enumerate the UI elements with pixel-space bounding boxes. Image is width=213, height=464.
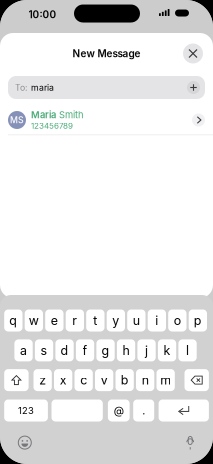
staticText: f <box>83 343 88 358</box>
staticText: w <box>29 313 39 328</box>
button[interactable]: h <box>117 339 135 361</box>
button[interactable]: MS <box>0 104 213 136</box>
button[interactable]: u <box>127 309 145 331</box>
staticText: k <box>164 343 171 358</box>
button[interactable]: b <box>115 369 134 391</box>
staticText: New Message <box>72 47 140 60</box>
button[interactable]: c <box>74 369 93 391</box>
button[interactable]: q <box>4 309 22 331</box>
button[interactable]: . <box>133 399 154 421</box>
staticText: h <box>123 343 130 358</box>
button[interactable]: i <box>148 309 166 331</box>
button[interactable]: Dictate <box>180 433 200 453</box>
staticText: z <box>39 373 46 388</box>
staticText: 10:00 <box>28 8 56 21</box>
button[interactable]: t <box>86 309 104 331</box>
button[interactable]: a <box>14 339 33 361</box>
staticText: p <box>194 313 202 328</box>
staticText: t <box>93 313 97 328</box>
staticText: Smith <box>56 109 84 121</box>
staticText: v <box>101 373 108 388</box>
button[interactable]: l <box>178 339 197 361</box>
staticText: j <box>145 343 148 358</box>
button[interactable]: p <box>189 309 207 331</box>
staticText: x <box>60 373 67 388</box>
staticText: b <box>121 373 129 388</box>
button[interactable]: e <box>45 309 63 331</box>
button[interactable]: g <box>96 339 115 361</box>
button[interactable]: z <box>33 369 52 391</box>
button[interactable]: n <box>136 369 154 391</box>
staticText: d <box>60 343 68 358</box>
staticText: MS <box>10 115 24 125</box>
staticText: m <box>160 373 171 388</box>
button[interactable]: w <box>25 309 43 331</box>
staticText: g <box>102 343 110 358</box>
button[interactable]: r <box>66 309 84 331</box>
staticText: o <box>174 313 181 328</box>
button[interactable]: Close <box>183 43 203 63</box>
staticText: c <box>80 373 87 388</box>
button[interactable]: f <box>76 339 94 361</box>
button[interactable]: Shift <box>4 369 29 391</box>
staticText: maria <box>27 82 54 93</box>
button[interactable]: v <box>95 369 113 391</box>
staticText: 123456789 <box>31 121 73 131</box>
button[interactable]: Add contact <box>187 81 200 94</box>
button[interactable]: Return <box>159 399 209 421</box>
button[interactable]: m <box>156 369 175 391</box>
staticText: To: <box>15 82 27 93</box>
staticText: . <box>142 404 145 417</box>
staticText: e <box>51 313 58 328</box>
button[interactable]: Delete <box>184 369 209 391</box>
button[interactable]: j <box>137 339 156 361</box>
button[interactable]: k <box>158 339 176 361</box>
button[interactable]: Emoji <box>15 433 35 453</box>
staticText: y <box>112 313 119 328</box>
staticText: a <box>20 343 27 358</box>
button[interactable]: x <box>54 369 72 391</box>
staticText: q <box>9 313 17 328</box>
staticText: i <box>155 313 158 328</box>
staticText: s <box>40 343 47 358</box>
button[interactable]: s <box>35 339 53 361</box>
button[interactable]: 123 <box>4 399 48 421</box>
button[interactable]: o <box>168 309 186 331</box>
staticText: n <box>142 373 149 388</box>
button[interactable]: d <box>55 339 74 361</box>
staticText: r <box>72 313 77 328</box>
staticText: l <box>186 343 189 358</box>
staticText: 123 <box>18 405 34 416</box>
button[interactable] <box>51 399 103 421</box>
staticText: u <box>133 313 140 328</box>
button[interactable]: y <box>107 309 125 331</box>
staticText: Maria <box>31 109 56 121</box>
staticText: @ <box>114 404 124 417</box>
button[interactable]: @ <box>108 399 130 421</box>
